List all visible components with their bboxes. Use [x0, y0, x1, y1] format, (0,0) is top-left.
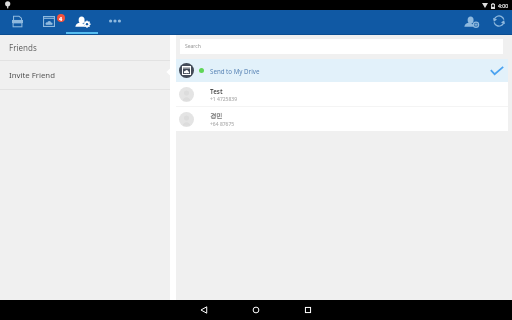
button[interactable]: 경민	[176, 107, 508, 131]
button[interactable]: Add friend	[458, 10, 484, 32]
staticText: Send to My Drive	[210, 67, 260, 75]
button[interactable]: Invite Friend	[0, 61, 170, 89]
staticText: 4:00	[498, 2, 509, 9]
button[interactable]: Contacts	[69, 10, 95, 32]
staticText: +64 87675	[210, 121, 235, 128]
button[interactable]: More options	[102, 10, 128, 32]
button[interactable]: Printers	[4, 10, 30, 32]
button[interactable]: Recents	[282, 300, 334, 320]
staticText: 4	[59, 15, 63, 22]
button[interactable]: Photos	[36, 10, 62, 32]
staticText: Invite Friend	[9, 70, 55, 81]
staticText: 경민	[210, 112, 223, 120]
staticText: +1 4725839	[210, 96, 238, 103]
staticText: Test	[210, 87, 223, 95]
button[interactable]: Refresh	[486, 10, 512, 32]
button[interactable]: Back	[178, 300, 230, 320]
button[interactable]: Test	[176, 82, 508, 106]
button[interactable]: Home	[230, 300, 282, 320]
button[interactable]: Send to My Drive	[176, 59, 508, 82]
staticText: Search	[185, 43, 201, 50]
staticText: Friends	[9, 42, 37, 53]
